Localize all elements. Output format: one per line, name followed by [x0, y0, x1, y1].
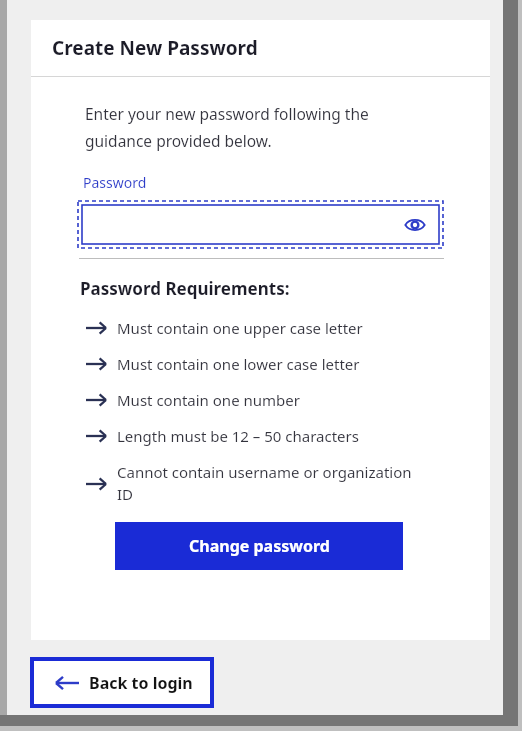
staticText: Change password [189, 535, 330, 557]
staticText: Password [83, 173, 147, 192]
staticText: Password Requirements: [80, 277, 290, 300]
staticText: Enter your new password following the [85, 103, 369, 124]
staticText: Create New Password [52, 35, 258, 61]
staticText: Must contain one upper case letter [117, 318, 363, 338]
button[interactable]: Show password [402, 212, 428, 238]
staticText: Cannot contain username or organization … [117, 462, 412, 505]
staticText: Must contain one number [117, 390, 300, 410]
staticText: guidance provided below. [85, 130, 272, 151]
button[interactable]: Change password [115, 522, 403, 570]
staticText: Back to login [89, 672, 193, 694]
staticText: Length must be 12 – 50 characters [117, 426, 359, 446]
button[interactable]: Password input [77, 200, 444, 249]
button[interactable]: Back to login [32, 659, 212, 706]
staticText: Must contain one lower case letter [117, 354, 360, 374]
